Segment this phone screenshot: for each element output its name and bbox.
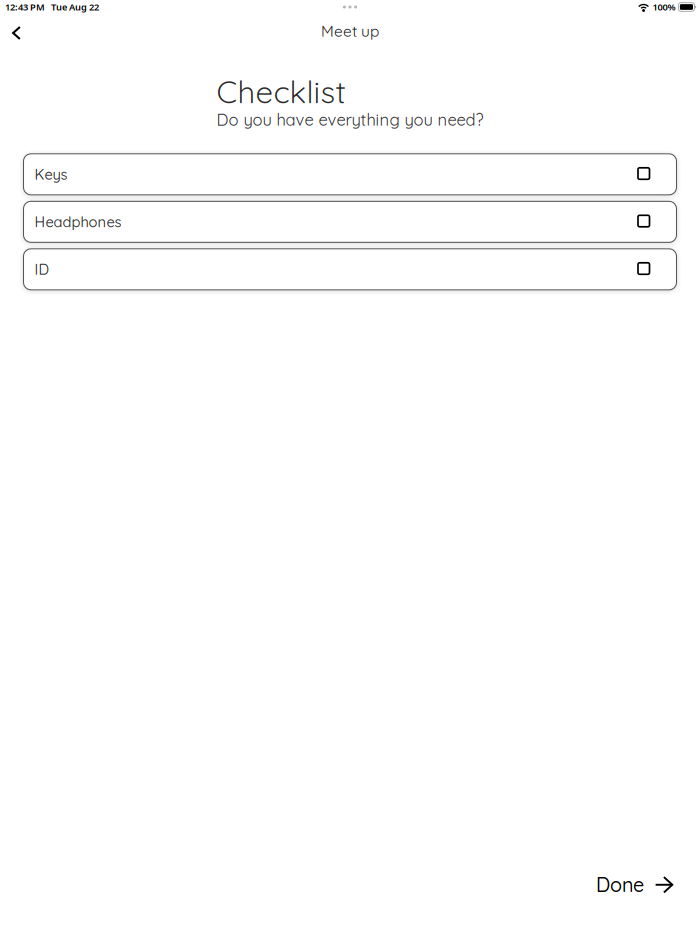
staticText: Meet up: [321, 21, 379, 41]
button[interactable]: ID: [23, 249, 676, 290]
button[interactable]: Done: [576, 862, 700, 907]
button[interactable]: Keys: [23, 154, 676, 195]
button[interactable]: Headphones: [23, 201, 676, 242]
staticText: ID: [34, 260, 49, 278]
staticText: Done: [596, 872, 644, 897]
staticText: Keys: [34, 165, 67, 183]
staticText: Do you have everything you need?: [216, 109, 483, 130]
staticText: Headphones: [34, 213, 121, 231]
staticText: Checklist: [216, 72, 345, 111]
staticText: 12:43 PM: [5, 1, 45, 13]
staticText: Tue Aug 22: [51, 1, 99, 13]
staticText: 100%: [652, 1, 675, 13]
button[interactable]: Back: [0, 14, 30, 48]
